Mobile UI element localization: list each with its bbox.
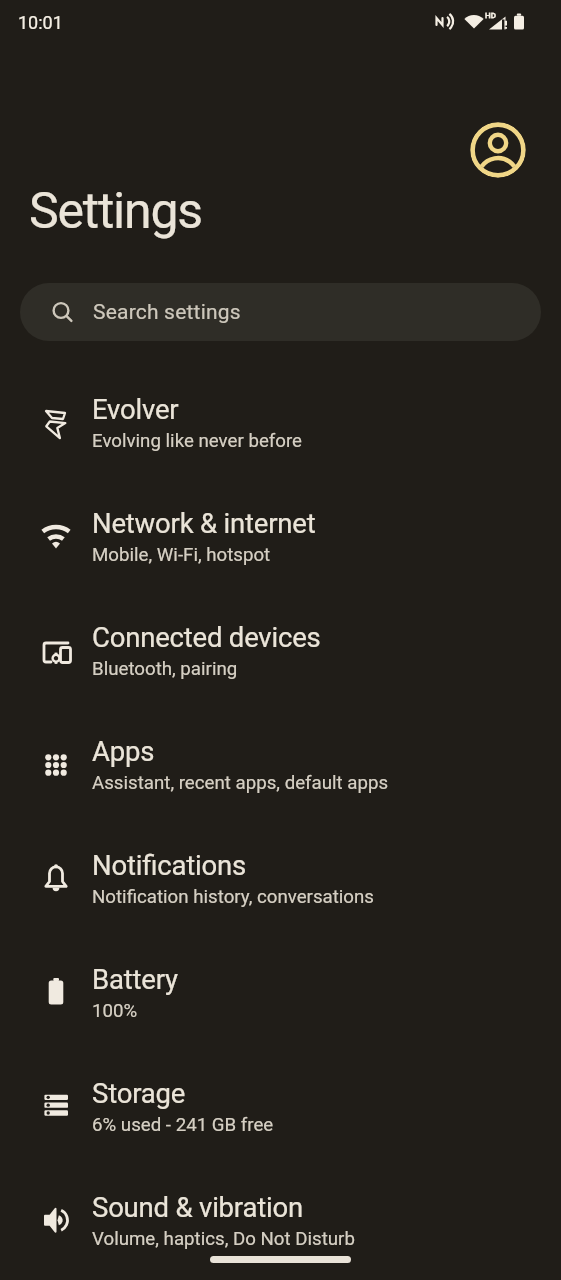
staticText: Mobile, Wi-Fi, hotspot bbox=[92, 544, 271, 566]
button[interactable]: Evolver bbox=[0, 367, 561, 481]
staticText: Network & internet bbox=[92, 507, 316, 539]
staticText: Assistant, recent apps, default apps bbox=[92, 772, 389, 794]
staticText: Storage bbox=[92, 1077, 186, 1109]
staticText: Bluetooth, pairing bbox=[92, 658, 238, 680]
staticText: Apps bbox=[92, 735, 155, 767]
staticText: Evolving like never before bbox=[92, 430, 303, 452]
button[interactable]: Apps bbox=[0, 709, 561, 823]
staticText: Evolver bbox=[92, 393, 179, 425]
button[interactable]: Network & internet bbox=[0, 481, 561, 595]
staticText: 10:01 bbox=[18, 12, 63, 33]
button[interactable]: Battery bbox=[0, 937, 561, 1051]
staticText: Sound & vibration bbox=[92, 1191, 303, 1223]
button[interactable] bbox=[470, 122, 526, 178]
staticText: Notifications bbox=[92, 849, 246, 881]
button[interactable]: Sound & vibration bbox=[0, 1165, 561, 1279]
button[interactable]: Storage bbox=[0, 1051, 561, 1165]
staticText: Search settings bbox=[93, 300, 241, 325]
staticText: Battery bbox=[92, 963, 178, 995]
staticText: HD bbox=[485, 11, 496, 20]
button[interactable]: Search settings bbox=[20, 283, 541, 341]
button[interactable]: Connected devices bbox=[0, 595, 561, 709]
staticText: 100% bbox=[92, 1000, 138, 1022]
staticText: Notification history, conversations bbox=[92, 886, 374, 908]
staticText: Connected devices bbox=[92, 621, 321, 653]
staticText: Volume, haptics, Do Not Disturb bbox=[92, 1228, 355, 1250]
button[interactable]: Notifications bbox=[0, 823, 561, 937]
staticText: Settings bbox=[29, 182, 202, 241]
staticText: 6% used - 241 GB free bbox=[92, 1114, 274, 1136]
